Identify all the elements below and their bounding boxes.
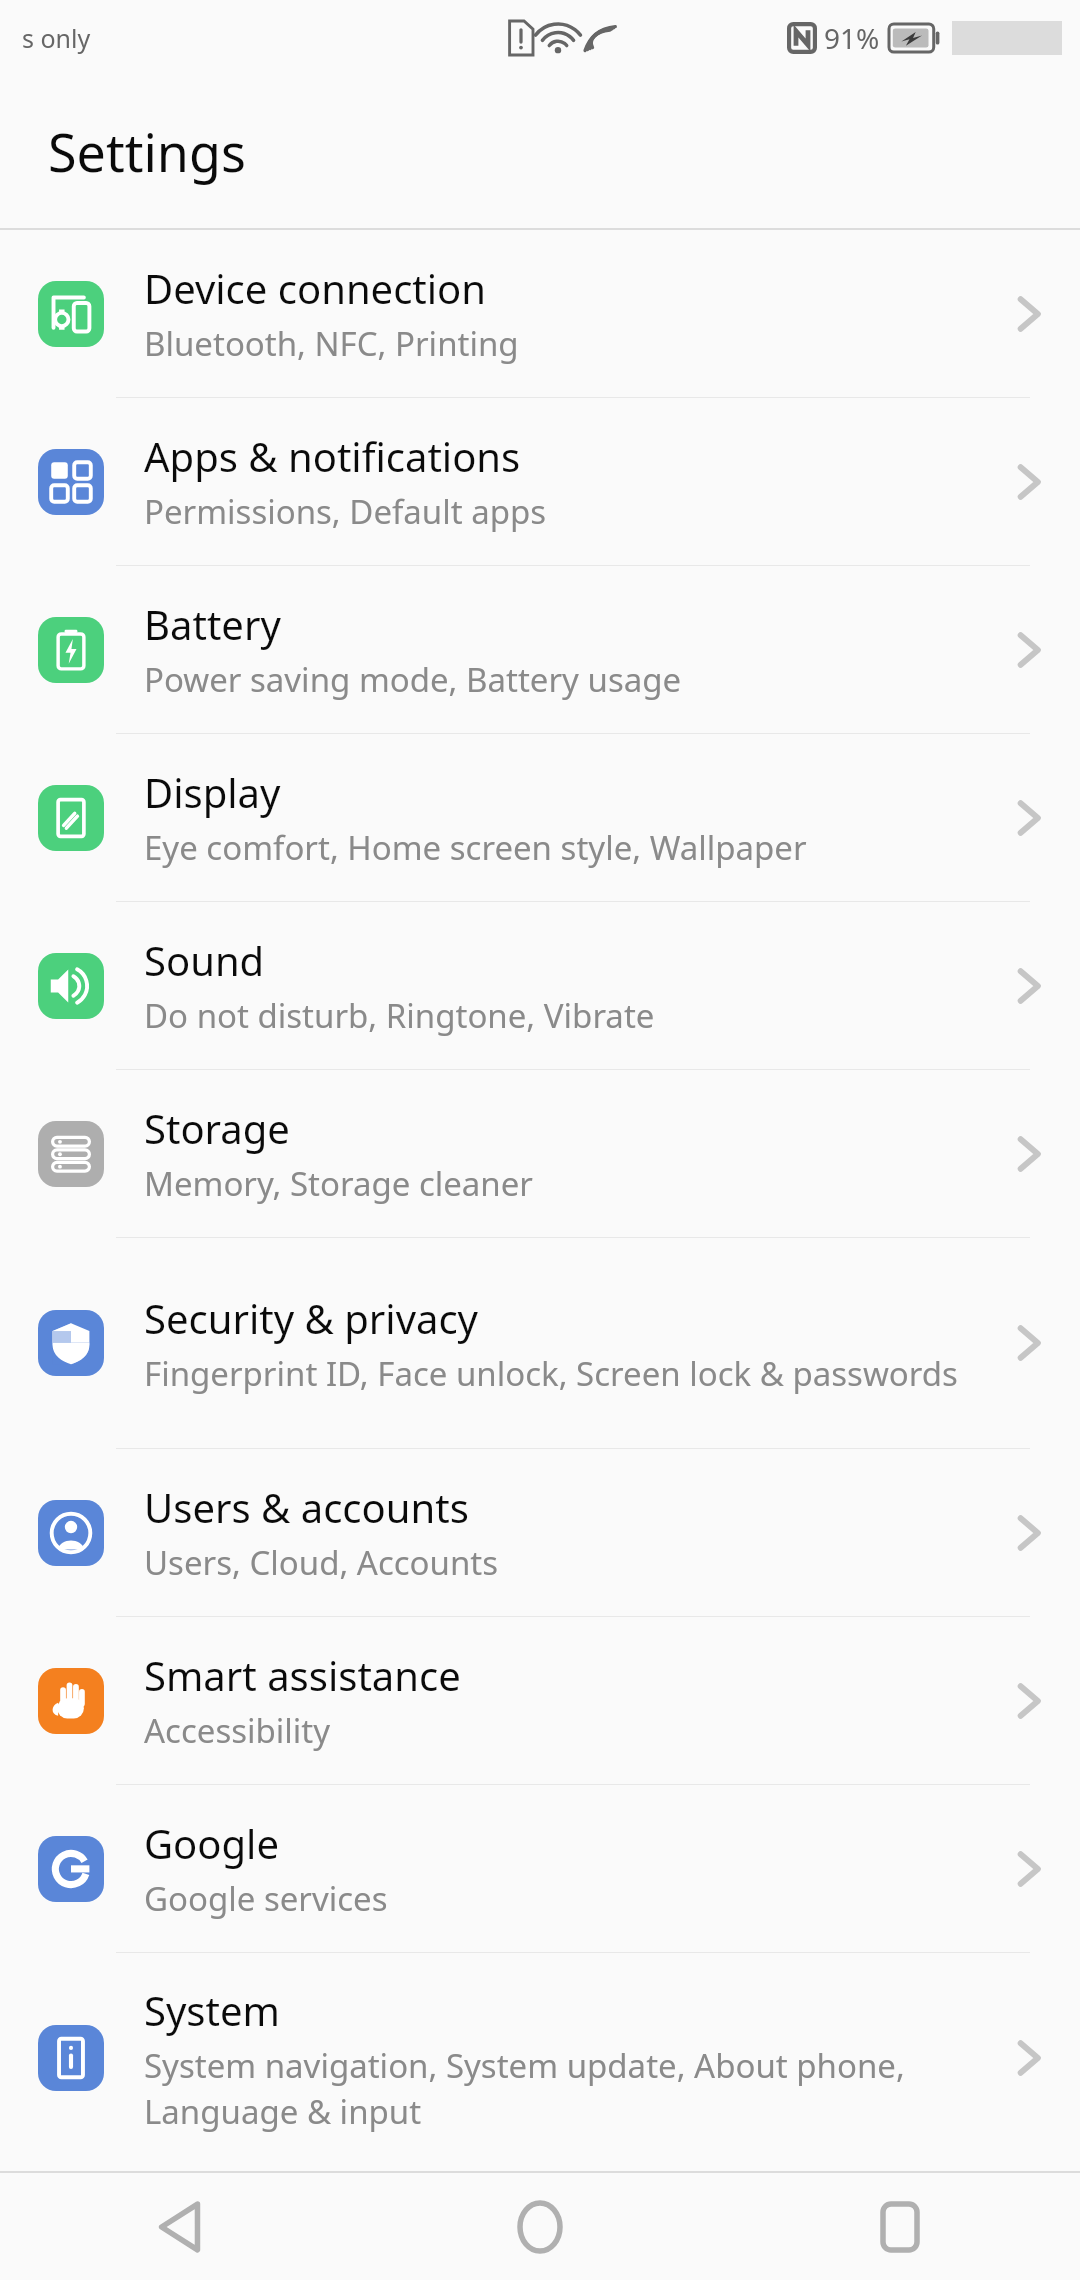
staticText: Fingerprint ID, Face unlock, Screen lock… <box>144 1351 958 1396</box>
staticText: Security & privacy <box>144 1291 478 1345</box>
button[interactable]: Sound <box>0 902 1080 1069</box>
button[interactable]: Smart assistance <box>0 1617 1080 1784</box>
button[interactable]: System <box>0 1953 1080 2163</box>
button[interactable]: Apps & notifications <box>0 398 1080 565</box>
staticText: Do not disturb, Ringtone, Vibrate <box>144 993 655 1038</box>
staticText: Sound <box>144 933 265 987</box>
button[interactable]: Back <box>0 2173 360 2280</box>
staticText: Settings <box>48 116 246 187</box>
staticText: Google services <box>144 1876 388 1921</box>
staticText: s only <box>22 21 91 55</box>
staticText: Memory, Storage cleaner <box>144 1161 534 1206</box>
staticText: Power saving mode, Battery usage <box>144 657 682 702</box>
staticText: Users, Cloud, Accounts <box>144 1540 499 1585</box>
button[interactable]: Home <box>360 2173 720 2280</box>
staticText: Display <box>144 765 281 819</box>
staticText: Device connection <box>144 261 487 315</box>
staticText: Eye comfort, Home screen style, Wallpape… <box>144 825 807 870</box>
staticText: Smart assistance <box>144 1648 461 1702</box>
staticText: System <box>144 1983 280 2037</box>
staticText: Battery <box>144 597 281 651</box>
button[interactable]: Device connection <box>0 230 1080 397</box>
staticText: Storage <box>144 1101 290 1155</box>
staticText: Permissions, Default apps <box>144 489 547 534</box>
staticText: 91% <box>824 19 880 57</box>
staticText: System navigation, System update, About … <box>144 2043 1002 2134</box>
button[interactable]: Storage <box>0 1070 1080 1237</box>
staticText: Bluetooth, NFC, Printing <box>144 321 519 366</box>
button[interactable]: Google <box>0 1785 1080 1952</box>
staticText: Users & accounts <box>144 1480 469 1534</box>
button[interactable]: Display <box>0 734 1080 901</box>
staticText: Apps & notifications <box>144 429 521 483</box>
button[interactable]: Battery <box>0 566 1080 733</box>
staticText: Google <box>144 1816 279 1870</box>
staticText: Accessibility <box>144 1708 331 1753</box>
button[interactable]: Recent apps <box>720 2173 1080 2280</box>
button[interactable]: Users & accounts <box>0 1449 1080 1616</box>
button[interactable]: Security & privacy <box>0 1238 1080 1448</box>
